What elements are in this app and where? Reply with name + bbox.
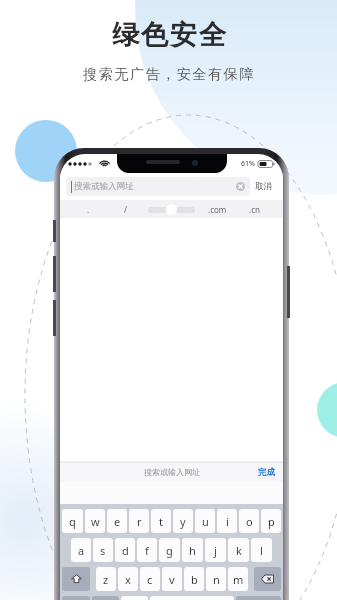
staticText: d	[122, 543, 129, 558]
button[interactable]: Backspace	[254, 567, 281, 591]
button[interactable]: .com	[199, 204, 236, 215]
button[interactable]: m	[228, 567, 248, 591]
staticText: /	[124, 204, 127, 215]
button[interactable]: p	[261, 509, 281, 533]
button[interactable]: o	[239, 509, 259, 533]
button[interactable]: Search	[236, 596, 281, 600]
button[interactable]: Space	[150, 596, 234, 600]
staticText: v	[169, 572, 175, 587]
staticText: t	[159, 514, 163, 529]
staticText: k	[236, 543, 242, 558]
staticText: l	[260, 543, 263, 558]
button[interactable]: g	[159, 538, 180, 562]
staticText: p	[268, 514, 275, 529]
staticText: e	[114, 514, 121, 529]
button[interactable]: n	[206, 567, 226, 591]
button[interactable]: u	[195, 509, 215, 533]
staticText: x	[125, 572, 131, 587]
staticText: b	[191, 572, 198, 587]
staticText: c	[147, 572, 153, 587]
button[interactable]: f	[137, 538, 157, 562]
button[interactable]: /	[107, 204, 144, 215]
button[interactable]: h	[182, 538, 203, 562]
staticText: a	[78, 543, 85, 558]
button[interactable]: Slider	[166, 204, 177, 215]
button[interactable]: b	[184, 567, 204, 591]
staticText: .cn	[249, 204, 260, 215]
staticText: g	[166, 543, 173, 558]
button[interactable]: i	[217, 509, 237, 533]
staticText: z	[103, 572, 109, 587]
staticText: s	[100, 543, 106, 558]
button[interactable]: Numbers	[62, 596, 90, 600]
staticText: w	[91, 514, 100, 529]
button[interactable]: 取消	[250, 178, 277, 195]
button[interactable]: Space left	[121, 596, 148, 600]
staticText: 完成	[258, 467, 275, 478]
button[interactable]: Shift	[62, 567, 90, 591]
button[interactable]: y	[173, 509, 193, 533]
button[interactable]: v	[162, 567, 182, 591]
staticText: y	[180, 514, 186, 529]
staticText: 搜索或输入网址	[144, 467, 200, 477]
button[interactable]: t	[151, 509, 171, 533]
button[interactable]: .cn	[236, 204, 273, 215]
staticText: 取消	[255, 181, 272, 192]
staticText: u	[202, 514, 209, 529]
button[interactable]: q	[62, 509, 83, 533]
button[interactable]: s	[93, 538, 113, 562]
staticText: q	[69, 514, 76, 529]
staticText: r	[137, 514, 142, 529]
button[interactable]: e	[107, 509, 127, 533]
button[interactable]: Clear	[236, 182, 245, 191]
staticText: j	[214, 543, 217, 558]
button[interactable]: z	[96, 567, 116, 591]
button[interactable]: d	[115, 538, 135, 562]
button[interactable]: l	[251, 538, 272, 562]
staticText: m	[233, 572, 244, 587]
staticText: i	[226, 514, 229, 529]
button[interactable]: w	[85, 509, 105, 533]
button[interactable]: 搜索或输入网址	[66, 177, 250, 196]
button[interactable]: r	[129, 509, 149, 533]
button[interactable]: Emoji	[92, 596, 119, 600]
staticText: f	[145, 543, 149, 558]
button[interactable]: k	[228, 538, 249, 562]
button[interactable]: .	[70, 204, 107, 215]
staticText: 绿色安全	[111, 18, 227, 52]
button[interactable]: j	[205, 538, 226, 562]
staticText: .com	[208, 204, 227, 215]
button[interactable]: a	[71, 538, 91, 562]
staticText: h	[189, 543, 196, 558]
staticText: n	[213, 572, 220, 587]
staticText: .	[87, 204, 90, 215]
staticText: o	[246, 514, 253, 529]
staticText: 搜索无广告，安全有保障	[83, 66, 255, 84]
staticText: 61%	[241, 159, 255, 169]
staticText: 搜索或输入网址	[74, 181, 134, 192]
button[interactable]: c	[140, 567, 160, 591]
button[interactable]: x	[118, 567, 138, 591]
button[interactable]: 完成	[250, 464, 283, 481]
